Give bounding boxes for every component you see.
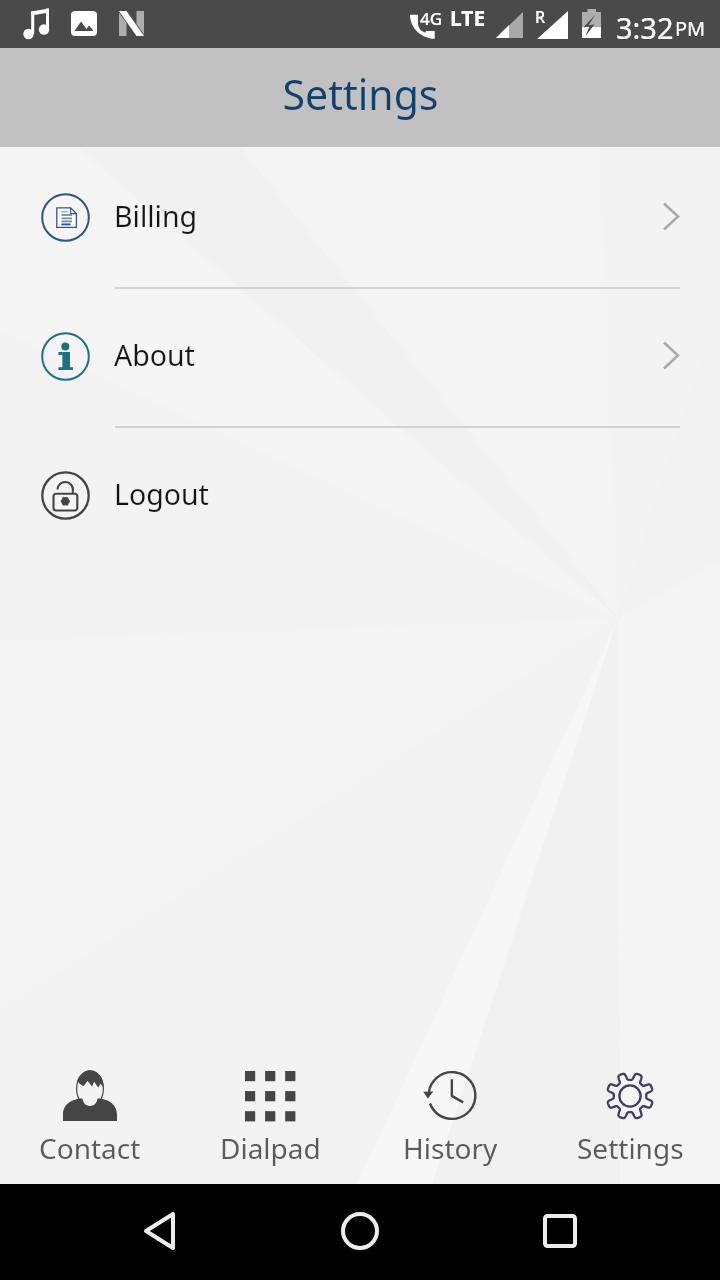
staticText: Logout xyxy=(114,475,209,514)
button[interactable]: About xyxy=(0,286,720,425)
staticText: Billing xyxy=(114,197,198,236)
staticText: Settings xyxy=(577,1129,684,1167)
staticText: Dialpad xyxy=(220,1129,321,1167)
staticText: Contact xyxy=(39,1129,141,1167)
staticText: Settings xyxy=(282,66,439,122)
staticText: History xyxy=(403,1129,498,1167)
staticText: 3:32 xyxy=(616,8,674,47)
staticText: 4G xyxy=(420,7,443,30)
other: History xyxy=(421,1071,479,1121)
button[interactable]: Dialpad xyxy=(180,1060,360,1184)
other: Contact xyxy=(63,1071,117,1121)
staticText: LTE xyxy=(450,4,486,33)
button[interactable]: Settings xyxy=(540,1060,720,1184)
other: Settings xyxy=(605,1071,655,1121)
button[interactable]: Logout xyxy=(0,425,720,564)
staticText: R xyxy=(535,6,546,28)
other: Dialpad xyxy=(245,1071,295,1121)
staticText: PM xyxy=(675,15,706,42)
button[interactable]: History xyxy=(360,1060,540,1184)
button[interactable]: Billing xyxy=(0,147,720,286)
button[interactable]: Contact xyxy=(0,1060,180,1184)
staticText: About xyxy=(114,336,195,375)
